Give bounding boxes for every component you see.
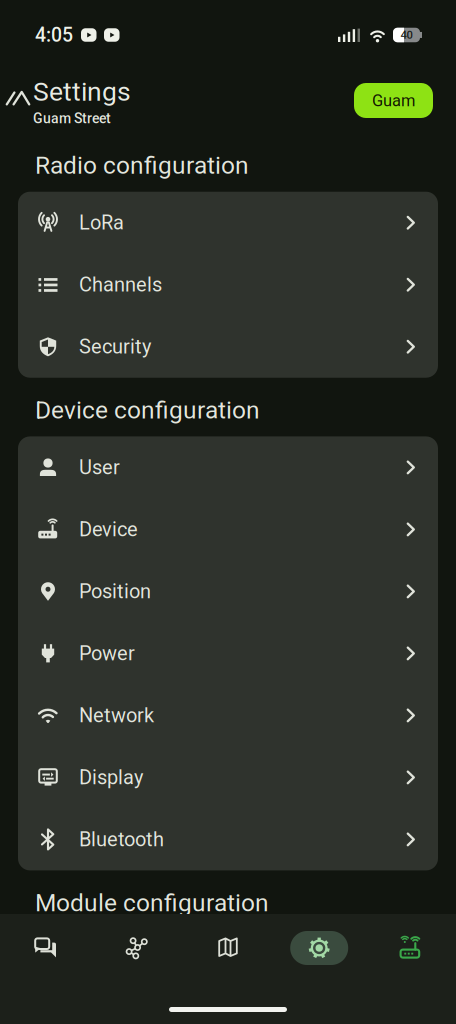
button[interactable]: Network bbox=[18, 684, 438, 746]
button[interactable]: Guam bbox=[354, 83, 433, 118]
button[interactable]: Display bbox=[18, 746, 438, 808]
button[interactable]: User bbox=[18, 436, 438, 498]
staticText: Display bbox=[79, 766, 143, 789]
staticText: Bluetooth bbox=[79, 828, 164, 851]
staticText: Device configuration bbox=[35, 396, 260, 424]
staticText: Settings bbox=[33, 76, 131, 107]
button[interactable] bbox=[0, 914, 91, 982]
button[interactable] bbox=[365, 914, 456, 982]
button[interactable] bbox=[182, 914, 274, 982]
button[interactable]: Position bbox=[18, 560, 438, 622]
button[interactable]: Security bbox=[18, 316, 438, 378]
button[interactable]: LoRa bbox=[18, 192, 438, 254]
staticText: Power bbox=[79, 642, 135, 665]
staticText: User bbox=[79, 456, 120, 479]
staticText: Channels bbox=[79, 273, 162, 296]
staticText: Network bbox=[79, 704, 154, 727]
button[interactable]: Channels bbox=[18, 254, 438, 316]
button[interactable]: Power bbox=[18, 622, 438, 684]
staticText: Position bbox=[79, 580, 151, 603]
staticText: LoRa bbox=[79, 211, 124, 234]
staticText: Security bbox=[79, 335, 151, 358]
staticText: Guam bbox=[372, 91, 415, 110]
button[interactable] bbox=[91, 914, 182, 982]
staticText: 40 bbox=[400, 28, 412, 42]
button[interactable] bbox=[274, 914, 365, 982]
staticText: Device bbox=[79, 518, 138, 541]
button[interactable]: Device bbox=[18, 498, 438, 560]
button[interactable]: Bluetooth bbox=[18, 808, 438, 870]
staticText: Radio configuration bbox=[35, 151, 249, 180]
staticText: 4:05 bbox=[35, 24, 73, 46]
staticText: Module configuration bbox=[35, 888, 269, 917]
staticText: Guam Street bbox=[33, 110, 111, 127]
